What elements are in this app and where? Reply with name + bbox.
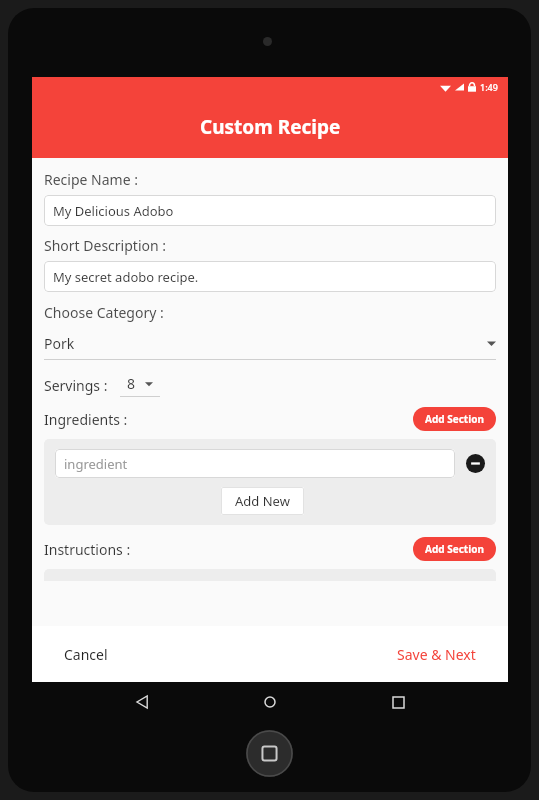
button[interactable]: Cancel (58, 639, 114, 670)
staticText: Servings : (44, 376, 108, 395)
button[interactable]: Add Section (413, 537, 496, 561)
staticText: 8 (127, 374, 136, 393)
button[interactable]: Add Section (413, 407, 496, 431)
button[interactable]: Pork (44, 330, 496, 356)
staticText: My secret adobo recipe. (53, 268, 199, 286)
button[interactable]: Back (126, 685, 160, 719)
button[interactable]: Save & Next (391, 639, 482, 670)
staticText: Recipe Name : (44, 170, 138, 189)
staticText: Ingredients : (44, 410, 128, 429)
staticText: Pork (44, 334, 75, 353)
staticText: Custom Recipe (200, 114, 341, 140)
button[interactable]: Home (253, 685, 287, 719)
button[interactable]: My Delicious Adobo (44, 195, 496, 226)
staticText: 1:49 (480, 81, 498, 93)
button[interactable]: Remove ingredient (466, 454, 485, 473)
button[interactable]: ingredient (55, 449, 455, 478)
staticText: Short Description : (44, 236, 167, 255)
button[interactable]: My secret adobo recipe. (44, 261, 496, 292)
staticText: Instructions : (44, 540, 131, 559)
staticText: Save & Next (397, 645, 476, 664)
button[interactable]: Add New (221, 487, 304, 515)
staticText: Add New (235, 492, 290, 510)
staticText: Add Section (425, 542, 484, 556)
staticText: My Delicious Adobo (53, 202, 174, 220)
button[interactable]: Recents (381, 685, 415, 719)
staticText: Choose Category : (44, 303, 164, 322)
button[interactable]: Home button (246, 730, 293, 777)
button[interactable]: 8 (120, 374, 160, 397)
staticText: Add Section (425, 412, 484, 426)
staticText: ingredient (64, 455, 128, 473)
staticText: Cancel (64, 645, 108, 664)
